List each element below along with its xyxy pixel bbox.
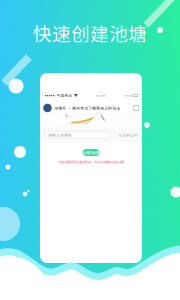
staticText: 中国移动 bbox=[56, 93, 72, 98]
staticText: 100% bbox=[124, 94, 132, 97]
staticText: 快速创建池塘 bbox=[33, 19, 147, 46]
staticText: 创建池塘 bbox=[83, 150, 99, 155]
staticText: 09:34 bbox=[96, 94, 105, 97]
staticText: 完成创建后即可邀请好友，可以在池塘内发布话题 bbox=[58, 160, 124, 164]
button[interactable]: 创建池塘 bbox=[82, 149, 99, 156]
staticText: 池塘号 · 期末考试了解释自己的说法 bbox=[54, 105, 120, 111]
staticText: 请输入池塘名 bbox=[48, 132, 72, 138]
staticText: 0/15字以内 bbox=[119, 132, 138, 138]
